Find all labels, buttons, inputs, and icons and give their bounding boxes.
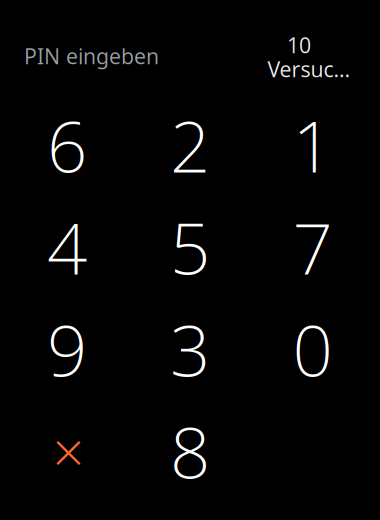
- button[interactable]: 9: [6, 298, 128, 400]
- staticText: 8: [170, 403, 210, 499]
- button[interactable]: 2: [129, 94, 251, 196]
- button[interactable]: 5: [129, 196, 251, 298]
- staticText: Versuc…: [267, 54, 350, 84]
- staticText: 4: [47, 199, 87, 295]
- button[interactable]: 7: [251, 196, 374, 298]
- button[interactable]: 1: [251, 94, 374, 196]
- staticText: 3: [170, 301, 210, 397]
- button[interactable]: Delete: [6, 400, 128, 502]
- staticText: 5: [170, 199, 210, 295]
- staticText: 10: [287, 30, 311, 60]
- button[interactable]: 8: [129, 400, 251, 502]
- staticText: 2: [170, 97, 210, 193]
- staticText: 7: [292, 199, 332, 295]
- button[interactable]: 0: [251, 298, 374, 400]
- button[interactable]: 6: [6, 94, 128, 196]
- staticText: 1: [292, 97, 332, 193]
- staticText: 9: [47, 301, 87, 397]
- button[interactable]: 4: [6, 196, 128, 298]
- staticText: PIN eingeben: [24, 41, 159, 71]
- staticText: 0: [292, 301, 332, 397]
- button[interactable]: 3: [129, 298, 251, 400]
- staticText: 6: [47, 97, 87, 193]
